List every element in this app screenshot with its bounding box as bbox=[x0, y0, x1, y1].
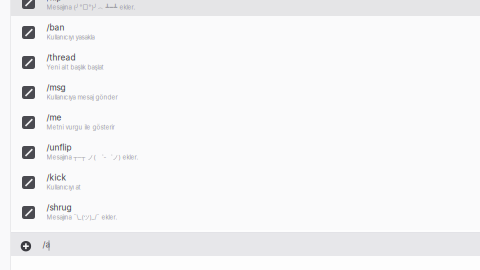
staticText: Kullanıcıyı at bbox=[46, 183, 80, 191]
staticText: Mesajına ¯\_(ツ)_/¯ ekler. bbox=[46, 213, 117, 221]
button[interactable]: /me bbox=[11, 106, 480, 136]
staticText: /kick bbox=[46, 172, 66, 182]
staticText: /thread bbox=[46, 52, 75, 62]
staticText: Kullanıcıyı yasakla bbox=[46, 33, 94, 41]
staticText: /flip bbox=[46, 0, 61, 2]
button[interactable]: /kick bbox=[11, 166, 480, 196]
staticText: /ban bbox=[46, 22, 64, 32]
button[interactable]: /thread bbox=[11, 46, 480, 76]
staticText: Mesajına ┬─┬ ノ( ゜-゜ノ) ekler. bbox=[46, 153, 138, 161]
staticText: Metni vurgu ile gösterir bbox=[46, 123, 114, 131]
staticText: /unflip bbox=[46, 142, 71, 152]
button[interactable]: Add attachment bbox=[18, 238, 34, 254]
staticText: Mesajına (╯°□°)╯︵ ┻━┻ ekler. bbox=[46, 3, 135, 11]
staticText: /msg bbox=[46, 82, 65, 92]
button[interactable]: /ban bbox=[11, 16, 480, 46]
staticText: /a bbox=[42, 239, 50, 249]
staticText: Yeni alt başlık başlat bbox=[46, 63, 103, 71]
staticText: /shrug bbox=[46, 202, 71, 212]
button[interactable]: /unflip bbox=[11, 136, 480, 166]
button[interactable]: /flip bbox=[11, 0, 480, 16]
button[interactable]: /shrug bbox=[11, 196, 480, 226]
staticText: /me bbox=[46, 112, 61, 122]
button[interactable]: /msg bbox=[11, 76, 480, 106]
staticText: Kullanıcıya mesaj gönder bbox=[46, 93, 117, 101]
